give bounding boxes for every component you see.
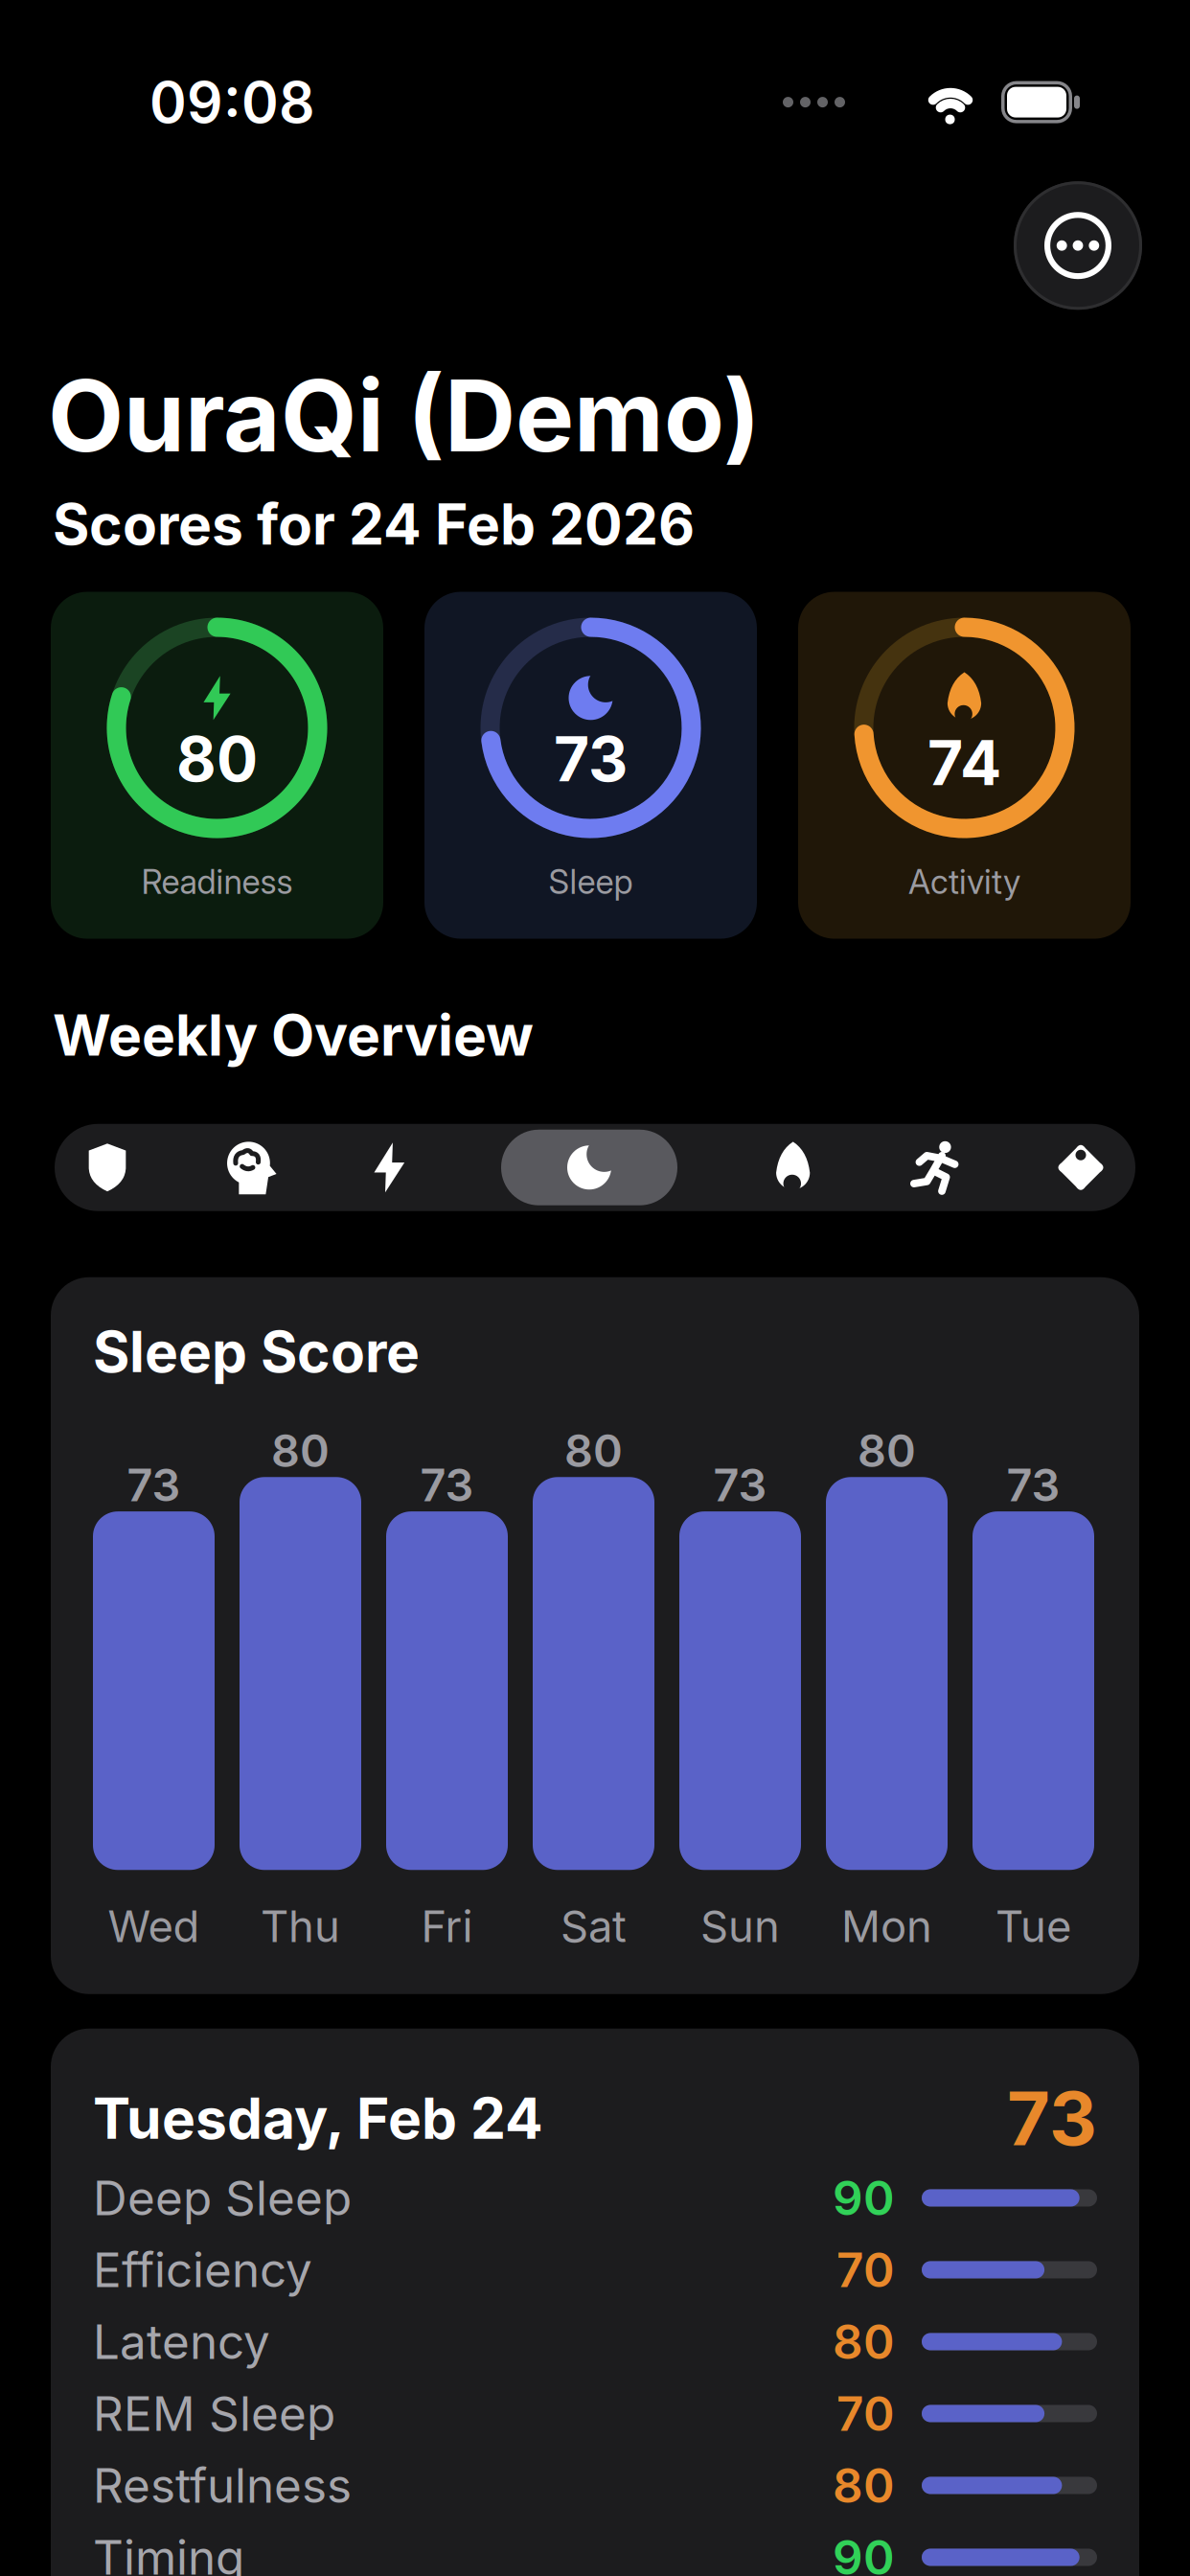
staticText: Restfulness <box>93 2458 352 2513</box>
staticText: Sun <box>700 1901 780 1952</box>
button[interactable] <box>224 1141 278 1194</box>
staticText: 80 <box>833 2458 895 2513</box>
staticText: 80 <box>858 1424 916 1477</box>
staticText: 73 <box>713 1459 767 1511</box>
button[interactable] <box>1057 1144 1105 1191</box>
button[interactable] <box>85 1143 129 1192</box>
staticText: Sleep Score <box>93 1318 420 1385</box>
button[interactable]: 73 <box>424 592 757 939</box>
button[interactable] <box>909 1141 962 1194</box>
staticText: Tuesday, Feb 24 <box>93 2085 543 2151</box>
staticText: Sleep <box>549 862 633 901</box>
staticText: Sat <box>561 1901 627 1952</box>
staticText: 90 <box>833 2529 895 2576</box>
staticText: Scores for 24 Feb 2026 <box>53 491 695 557</box>
button[interactable] <box>372 1143 407 1192</box>
staticText: Wed <box>108 1901 200 1952</box>
staticText: 73 <box>1007 2075 1097 2162</box>
staticText: 09:08 <box>149 69 315 135</box>
staticText: OuraQi (Demo) <box>48 358 761 474</box>
button[interactable]: 80 <box>51 592 383 939</box>
staticText: Readiness <box>141 862 293 901</box>
staticText: 90 <box>833 2170 895 2226</box>
button[interactable] <box>772 1142 814 1193</box>
staticText: Latency <box>93 2314 270 2370</box>
staticText: 70 <box>836 2242 895 2298</box>
staticText: Activity <box>908 862 1020 901</box>
staticText: 80 <box>564 1424 623 1477</box>
staticText: Deep Sleep <box>93 2170 352 2226</box>
staticText: 80 <box>271 1424 330 1477</box>
staticText: 80 <box>176 723 258 795</box>
staticText: 70 <box>836 2386 895 2441</box>
staticText: Efficiency <box>93 2242 312 2298</box>
staticText: Thu <box>261 1901 340 1952</box>
button[interactable] <box>1014 181 1142 310</box>
button[interactable]: 74 <box>798 592 1131 939</box>
staticText: 73 <box>127 1459 181 1511</box>
staticText: 73 <box>420 1459 474 1511</box>
staticText: 74 <box>927 727 1001 799</box>
staticText: Timing <box>93 2529 244 2576</box>
staticText: Mon <box>841 1901 932 1952</box>
staticText: Tue <box>995 1901 1071 1952</box>
staticText: 80 <box>833 2314 895 2370</box>
staticText: 73 <box>554 723 628 795</box>
staticText: REM Sleep <box>93 2386 335 2441</box>
button[interactable] <box>501 1130 677 1205</box>
staticText: 73 <box>1007 1459 1060 1511</box>
staticText: Weekly Overview <box>53 1002 534 1068</box>
staticText: Fri <box>421 1901 473 1952</box>
